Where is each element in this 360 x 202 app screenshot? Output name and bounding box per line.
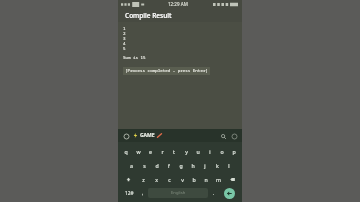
button[interactable]: Shift xyxy=(121,173,136,185)
staticText: o xyxy=(220,148,224,155)
staticText: r xyxy=(161,148,164,155)
button[interactable]: e xyxy=(145,145,155,157)
staticText: q xyxy=(124,148,128,155)
staticText: z xyxy=(142,176,145,183)
staticText: b xyxy=(192,176,196,183)
button[interactable]: GAME xyxy=(133,132,162,139)
button[interactable]: More options xyxy=(230,132,238,140)
staticText: a xyxy=(130,162,133,169)
staticText: c xyxy=(168,176,171,183)
staticText: n xyxy=(204,176,208,183)
staticText: t xyxy=(173,148,175,155)
staticText: w xyxy=(136,148,141,155)
button[interactable]: p xyxy=(229,145,239,157)
staticText: 5 xyxy=(123,46,126,51)
button[interactable]: Clipboard xyxy=(122,132,130,140)
staticText: 3 xyxy=(123,36,126,41)
button[interactable]: m xyxy=(213,173,223,185)
button[interactable]: Period xyxy=(210,187,217,199)
staticText: m xyxy=(216,176,221,183)
button[interactable]: d xyxy=(152,159,162,171)
button[interactable]: f xyxy=(164,159,174,171)
button[interactable]: c xyxy=(164,173,175,185)
button[interactable]: n xyxy=(201,173,211,185)
button[interactable]: l xyxy=(224,159,234,171)
button[interactable]: i xyxy=(205,145,215,157)
button[interactable]: o xyxy=(217,145,227,157)
staticText: 1 xyxy=(123,26,126,31)
staticText: u xyxy=(196,148,200,155)
staticText: p xyxy=(232,148,236,155)
staticText: 12# xyxy=(125,190,134,197)
button[interactable]: z xyxy=(138,173,149,185)
button[interactable]: h xyxy=(188,159,198,171)
button[interactable]: j xyxy=(200,159,210,171)
staticText: e xyxy=(149,148,152,155)
staticText: 2 xyxy=(123,31,126,36)
button[interactable]: Space xyxy=(148,188,208,198)
button[interactable]: t xyxy=(169,145,179,157)
button[interactable]: s xyxy=(139,159,150,171)
staticText: j xyxy=(204,162,206,169)
staticText: Compile Result xyxy=(125,11,172,20)
staticText: g xyxy=(179,162,183,169)
button[interactable]: Backspace xyxy=(225,173,239,185)
staticText: v xyxy=(181,176,184,183)
button[interactable]: 12# xyxy=(121,187,138,199)
button[interactable]: r xyxy=(157,145,167,157)
staticText: 4 xyxy=(123,41,126,46)
staticText: . xyxy=(213,190,215,197)
button[interactable]: g xyxy=(176,159,186,171)
button[interactable]: a xyxy=(126,159,137,171)
staticText: [Process completed - press Enter] xyxy=(125,68,208,74)
button[interactable]: Enter xyxy=(219,187,239,199)
button[interactable]: u xyxy=(193,145,203,157)
button[interactable]: Search xyxy=(219,132,227,140)
button[interactable]: Comma xyxy=(140,187,146,199)
button[interactable]: q xyxy=(121,145,131,157)
staticText: Sum is 15 xyxy=(123,55,146,61)
button[interactable]: x xyxy=(151,173,162,185)
button[interactable]: w xyxy=(133,145,143,157)
staticText: , xyxy=(142,190,144,197)
staticText: GAME xyxy=(140,132,155,139)
button[interactable]: b xyxy=(189,173,199,185)
button[interactable]: y xyxy=(181,145,191,157)
staticText: l xyxy=(228,162,230,169)
staticText: d xyxy=(155,162,159,169)
staticText: h xyxy=(191,162,195,169)
staticText: s xyxy=(143,162,146,169)
staticText: y xyxy=(185,148,188,155)
staticText: x xyxy=(155,176,158,183)
staticText: i xyxy=(209,148,211,155)
button[interactable]: k xyxy=(212,159,222,171)
staticText: f xyxy=(168,162,170,169)
staticText: 12:29 AM xyxy=(168,1,188,7)
staticText: k xyxy=(216,162,219,169)
button[interactable]: v xyxy=(177,173,187,185)
staticText: English xyxy=(171,190,186,196)
